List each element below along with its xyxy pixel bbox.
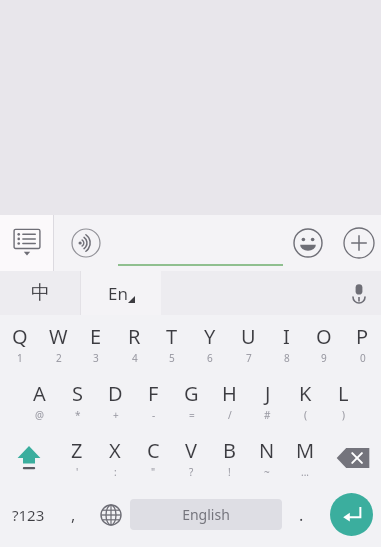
- button[interactable]: S: [58, 372, 96, 429]
- staticText: ): [342, 408, 345, 422]
- staticText: J: [265, 380, 271, 407]
- button[interactable]: W: [39, 315, 77, 372]
- button[interactable]: I: [267, 315, 305, 372]
- button[interactable]: G: [172, 372, 210, 429]
- button[interactable]: T: [153, 315, 191, 372]
- staticText: En: [108, 282, 128, 305]
- staticText: Q: [12, 323, 28, 350]
- button[interactable]: Backspace: [324, 429, 381, 486]
- staticText: .: [299, 504, 304, 526]
- button[interactable]: D: [96, 372, 134, 429]
- staticText: ~: [264, 465, 270, 479]
- button[interactable]: K: [286, 372, 324, 429]
- staticText: W: [49, 323, 68, 350]
- staticText: Z: [71, 437, 83, 464]
- staticText: D: [108, 380, 123, 407]
- staticText: !: [228, 465, 231, 479]
- staticText: ?: [189, 465, 194, 479]
- staticText: N: [259, 437, 275, 464]
- staticText: #: [264, 408, 271, 422]
- button[interactable]: O: [305, 315, 343, 372]
- staticText: F: [148, 380, 159, 407]
- staticText: -: [152, 408, 156, 422]
- staticText: 0: [360, 351, 366, 365]
- staticText: ': [76, 465, 79, 479]
- button[interactable]: ?123: [0, 486, 56, 543]
- button[interactable]: V: [172, 429, 210, 486]
- button[interactable]: M: [286, 429, 324, 486]
- button[interactable]: ,: [56, 486, 91, 543]
- staticText: 5: [169, 351, 175, 365]
- button[interactable]: Clipboard: [0, 215, 53, 271]
- staticText: 4: [132, 351, 138, 365]
- staticText: 7: [246, 351, 252, 365]
- button[interactable]: Z: [58, 429, 96, 486]
- staticText: G: [184, 380, 199, 407]
- staticText: K: [299, 380, 312, 407]
- staticText: L: [338, 380, 349, 407]
- staticText: I: [283, 323, 290, 350]
- staticText: ,: [71, 504, 76, 526]
- button[interactable]: J: [248, 372, 286, 429]
- staticText: 3: [93, 351, 99, 365]
- button[interactable]: B: [210, 429, 248, 486]
- staticText: T: [166, 323, 178, 350]
- staticText: 中: [31, 281, 50, 305]
- staticText: 1: [17, 351, 23, 365]
- staticText: H: [222, 380, 237, 407]
- staticText: 6: [207, 351, 213, 365]
- staticText: (: [304, 408, 307, 422]
- button[interactable]: N: [248, 429, 286, 486]
- staticText: :: [114, 465, 117, 479]
- staticText: U: [241, 323, 256, 350]
- button[interactable]: L: [324, 372, 362, 429]
- staticText: +: [113, 408, 119, 422]
- staticText: M: [296, 437, 315, 464]
- button[interactable]: E: [77, 315, 115, 372]
- staticText: /: [228, 408, 232, 422]
- button[interactable]: More options: [337, 215, 381, 271]
- staticText: =: [189, 408, 195, 422]
- staticText: S: [72, 380, 83, 407]
- button[interactable]: P: [343, 315, 381, 372]
- button[interactable]: F: [134, 372, 172, 429]
- staticText: @: [35, 408, 44, 422]
- button[interactable]: English: [130, 499, 282, 530]
- staticText: C: [147, 437, 160, 464]
- staticText: O: [316, 323, 332, 350]
- staticText: P: [356, 323, 369, 350]
- staticText: ": [151, 465, 156, 479]
- button[interactable]: U: [229, 315, 267, 372]
- button[interactable]: C: [134, 429, 172, 486]
- button[interactable]: Y: [191, 315, 229, 372]
- staticText: Y: [204, 323, 216, 350]
- staticText: 8: [284, 351, 290, 365]
- button[interactable]: Shift: [0, 429, 58, 486]
- button[interactable]: Emoji: [288, 215, 328, 271]
- button[interactable]: .: [282, 486, 321, 543]
- button[interactable]: R: [115, 315, 153, 372]
- staticText: ?123: [12, 505, 45, 525]
- staticText: E: [90, 323, 102, 350]
- button[interactable]: Q: [0, 315, 39, 372]
- staticText: V: [185, 437, 197, 464]
- button[interactable]: H: [210, 372, 248, 429]
- staticText: B: [223, 437, 236, 464]
- staticText: R: [128, 323, 141, 350]
- button[interactable]: X: [96, 429, 134, 486]
- staticText: English: [182, 505, 230, 524]
- button[interactable]: A: [20, 372, 58, 429]
- staticText: 2: [56, 351, 62, 365]
- staticText: A: [33, 380, 46, 407]
- button[interactable]: En: [81, 271, 161, 315]
- button[interactable]: Change language: [91, 486, 130, 543]
- staticText: ...: [301, 465, 310, 479]
- button[interactable]: Voice input: [66, 215, 106, 271]
- button[interactable]: 中: [0, 271, 80, 315]
- staticText: *: [75, 408, 81, 422]
- staticText: 9: [321, 351, 327, 365]
- staticText: X: [109, 437, 121, 464]
- button[interactable]: Enter: [321, 486, 381, 543]
- button[interactable]: Voice typing: [337, 271, 381, 315]
